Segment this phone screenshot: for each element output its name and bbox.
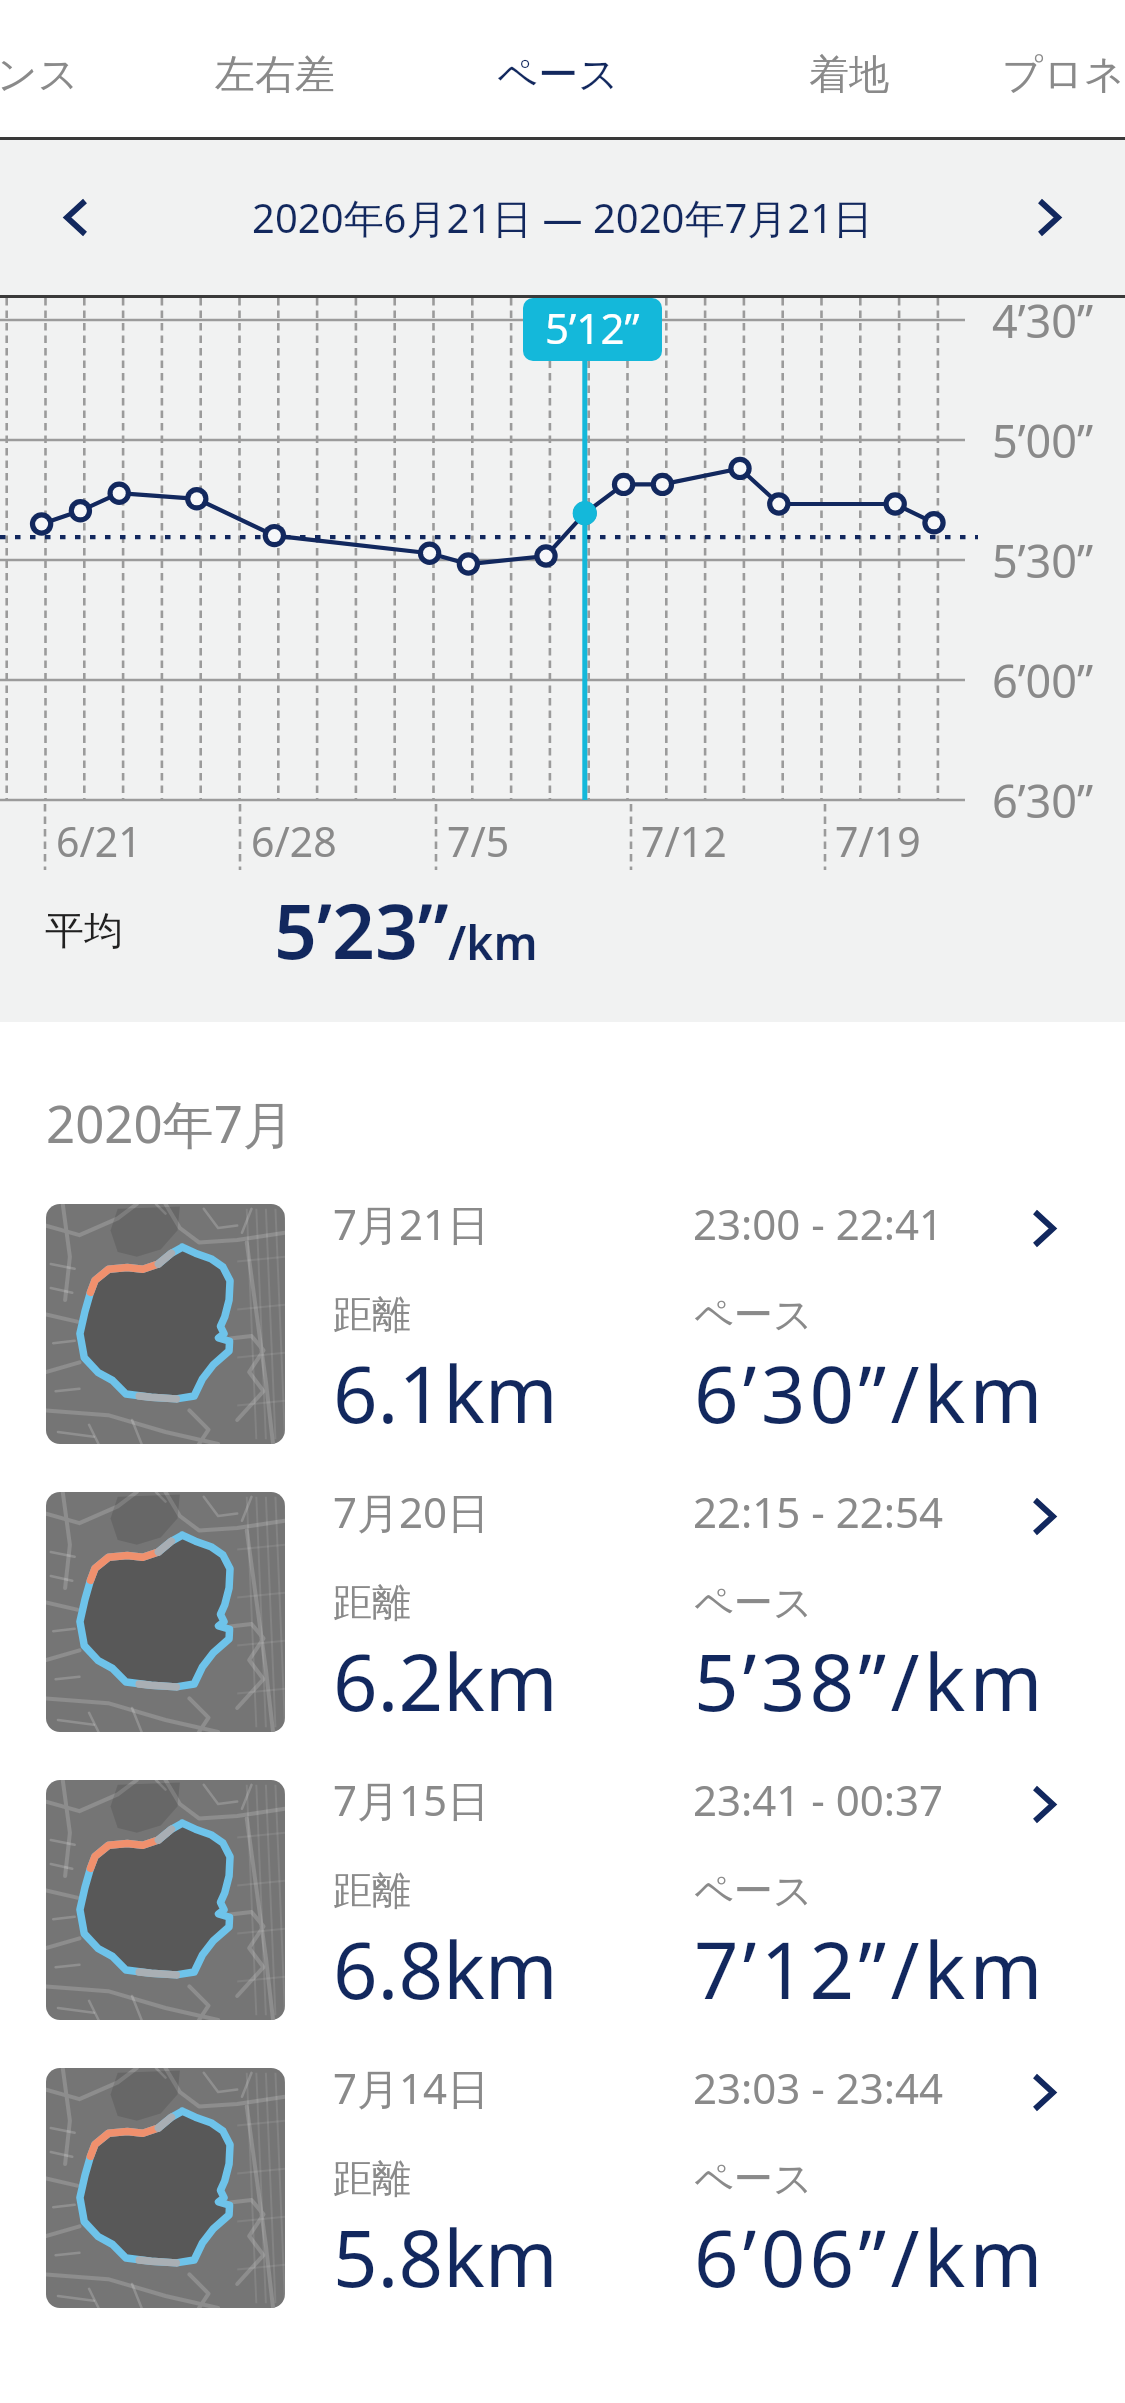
staticText: 5’30” <box>992 530 1094 591</box>
staticText: ペース <box>694 1578 813 1627</box>
staticText: 7月14日 <box>333 2059 490 2116</box>
staticText: 6’30”/km <box>694 1340 1047 1446</box>
staticText: 距離 <box>333 1866 411 1915</box>
button[interactable]: Open activity detail <box>1006 2054 1082 2130</box>
staticText: 7/12 <box>641 813 727 869</box>
staticText: 5’38”/km <box>694 1628 1047 1734</box>
button[interactable]: 左右差 <box>115 10 435 137</box>
staticText: 2020年7月 <box>46 1088 294 1158</box>
staticText: 6.8km <box>333 1916 558 2022</box>
staticText: 左右差 <box>215 49 335 99</box>
staticText: 着地 <box>809 49 889 99</box>
staticText: 6’06”/km <box>694 2204 1047 2310</box>
staticText: 6.2km <box>333 1628 558 1734</box>
button[interactable]: 7月14日 <box>0 2068 1125 2308</box>
staticText: プロネーション <box>1002 49 1125 99</box>
staticText: 7/19 <box>835 813 921 869</box>
staticText: 6/28 <box>251 813 337 869</box>
staticText: ペース <box>694 1290 813 1339</box>
staticText: 7/5 <box>447 813 510 869</box>
button[interactable]: プロネーション <box>985 10 1125 137</box>
staticText: ケイデンス <box>0 49 79 99</box>
staticText: 2020年6月21日 — 2020年7月21日 <box>252 190 874 245</box>
staticText: ペース <box>497 49 619 99</box>
staticText: 7’12”/km <box>694 1916 1047 2022</box>
staticText: 平均 <box>45 906 123 955</box>
staticText: 7月21日 <box>333 1195 490 1252</box>
staticText: 7月15日 <box>333 1771 490 1828</box>
button[interactable]: 7月20日 <box>0 1492 1125 1732</box>
staticText: ペース <box>694 2154 813 2203</box>
button[interactable]: 7月15日 <box>0 1780 1125 2020</box>
staticText: 距離 <box>333 1578 411 1627</box>
staticText: 23:00 - 22:41 <box>693 1195 944 1252</box>
staticText: ペース <box>694 1866 813 1915</box>
staticText: 5’23” <box>274 879 449 981</box>
button[interactable]: Open activity detail <box>1006 1190 1082 1266</box>
staticText: 6’00” <box>992 650 1094 711</box>
staticText: 距離 <box>333 2154 411 2203</box>
staticText: 23:03 - 23:44 <box>693 2059 944 2116</box>
staticText: /km <box>448 911 538 974</box>
button[interactable]: 着地 <box>689 10 1009 137</box>
staticText: 距離 <box>333 1290 411 1339</box>
staticText: 7月20日 <box>333 1483 490 1540</box>
button[interactable]: 7月21日 <box>0 1204 1125 1444</box>
staticText: 22:15 - 22:54 <box>693 1483 944 1540</box>
button[interactable]: Next period <box>999 140 1099 295</box>
staticText: 6/21 <box>56 813 142 869</box>
staticText: 6’30” <box>992 770 1094 831</box>
button[interactable]: Previous period <box>26 140 126 295</box>
button[interactable]: Open activity detail <box>1006 1478 1082 1554</box>
button[interactable]: Open activity detail <box>1006 1766 1082 1842</box>
staticText: 23:41 - 00:37 <box>693 1771 944 1828</box>
button[interactable]: ケイデンス <box>0 10 136 137</box>
staticText: 5’12” <box>545 299 640 356</box>
staticText: 4’30” <box>992 290 1094 351</box>
staticText: 6.1km <box>333 1340 558 1446</box>
staticText: 5’00” <box>992 410 1094 471</box>
staticText: 5.8km <box>333 2204 558 2310</box>
button[interactable]: ペース <box>398 10 718 137</box>
